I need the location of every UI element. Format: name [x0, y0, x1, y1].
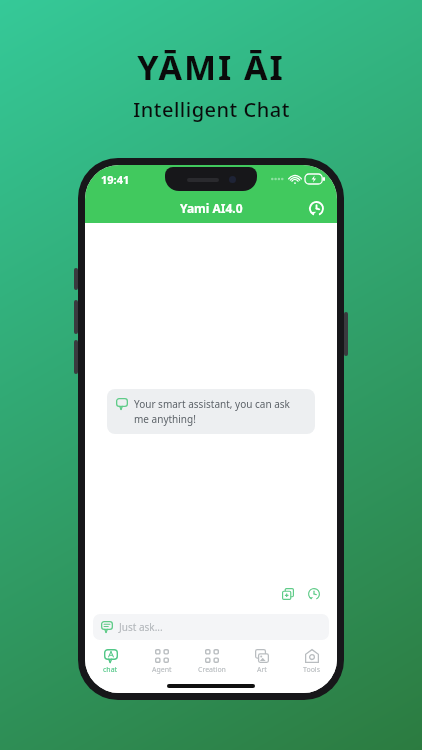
button[interactable]: chat	[85, 645, 136, 679]
button[interactable]: New chat	[279, 585, 297, 603]
button[interactable]: Tools	[287, 645, 337, 679]
staticText: Agent	[152, 665, 172, 675]
button[interactable]: Agent	[136, 645, 187, 679]
staticText: Yami AI4.0	[180, 200, 243, 216]
button[interactable]: Creation	[187, 645, 237, 679]
staticText: YĀMI ĀI	[137, 44, 285, 90]
staticText: Creation	[198, 665, 226, 675]
staticText: Just ask...	[119, 620, 163, 634]
staticText: Tools	[303, 665, 321, 675]
button[interactable]: Your smart assistant, you can ask me any…	[107, 389, 315, 434]
staticText: Intelligent Chat	[133, 96, 290, 123]
button[interactable]: History	[305, 585, 323, 603]
button[interactable]: Just ask...	[93, 614, 329, 640]
button[interactable]: History	[305, 197, 327, 219]
button[interactable]: Art	[237, 645, 287, 679]
staticText: chat	[103, 665, 118, 675]
staticText: Your smart assistant, you can ask me any…	[134, 397, 306, 426]
staticText: Art	[257, 665, 267, 675]
staticText: 19:41	[101, 172, 130, 187]
